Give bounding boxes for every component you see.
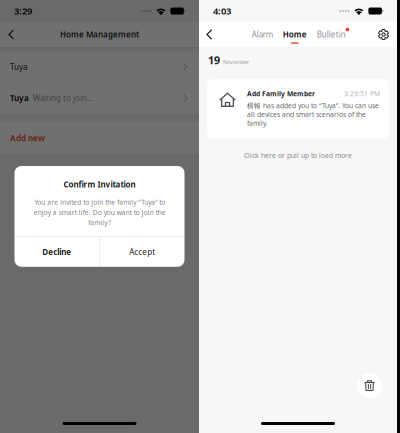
staticText: Waiting to join...: [33, 93, 93, 103]
button[interactable]: Bulletin: [312, 22, 351, 47]
button[interactable]: Home: [278, 22, 312, 47]
button[interactable]: Add Family Member: [207, 79, 389, 139]
staticText: Bulletin: [317, 29, 346, 40]
button[interactable]: Settings: [373, 22, 394, 47]
staticText: 3:29: [14, 5, 32, 17]
staticText: Decline: [42, 246, 71, 257]
staticText: Home: [283, 29, 307, 40]
button[interactable]: Accept: [100, 237, 184, 267]
staticText: Confirm Invitation: [63, 179, 135, 190]
staticText: Click here or pull up to load more: [244, 151, 352, 160]
button[interactable]: Add new: [0, 123, 199, 154]
button[interactable]: Tuya: [0, 83, 199, 114]
staticText: Add Family Member: [247, 89, 315, 98]
staticText: Add new: [10, 133, 45, 143]
button[interactable]: Back: [202, 23, 217, 46]
staticText: Tuya: [10, 61, 27, 72]
button[interactable]: Tuya: [0, 52, 199, 83]
button[interactable]: Delete: [357, 373, 382, 398]
button[interactable]: Alarm: [247, 22, 278, 47]
staticText: Accept: [129, 246, 155, 257]
staticText: 横幅 has added you to “Tuya”. You can use …: [247, 101, 379, 128]
staticText: Alarm: [252, 29, 273, 40]
staticText: You are invited to join the family “Tuya…: [33, 198, 165, 227]
button[interactable]: Decline: [14, 237, 99, 267]
staticText: 3:29:51 PM: [344, 89, 380, 98]
staticText: November: [223, 58, 249, 66]
staticText: Home Management: [60, 29, 139, 40]
button[interactable]: Back: [0, 24, 22, 45]
staticText: 19: [208, 53, 220, 67]
staticText: Tuya: [10, 93, 29, 103]
staticText: 4:03: [213, 5, 231, 17]
